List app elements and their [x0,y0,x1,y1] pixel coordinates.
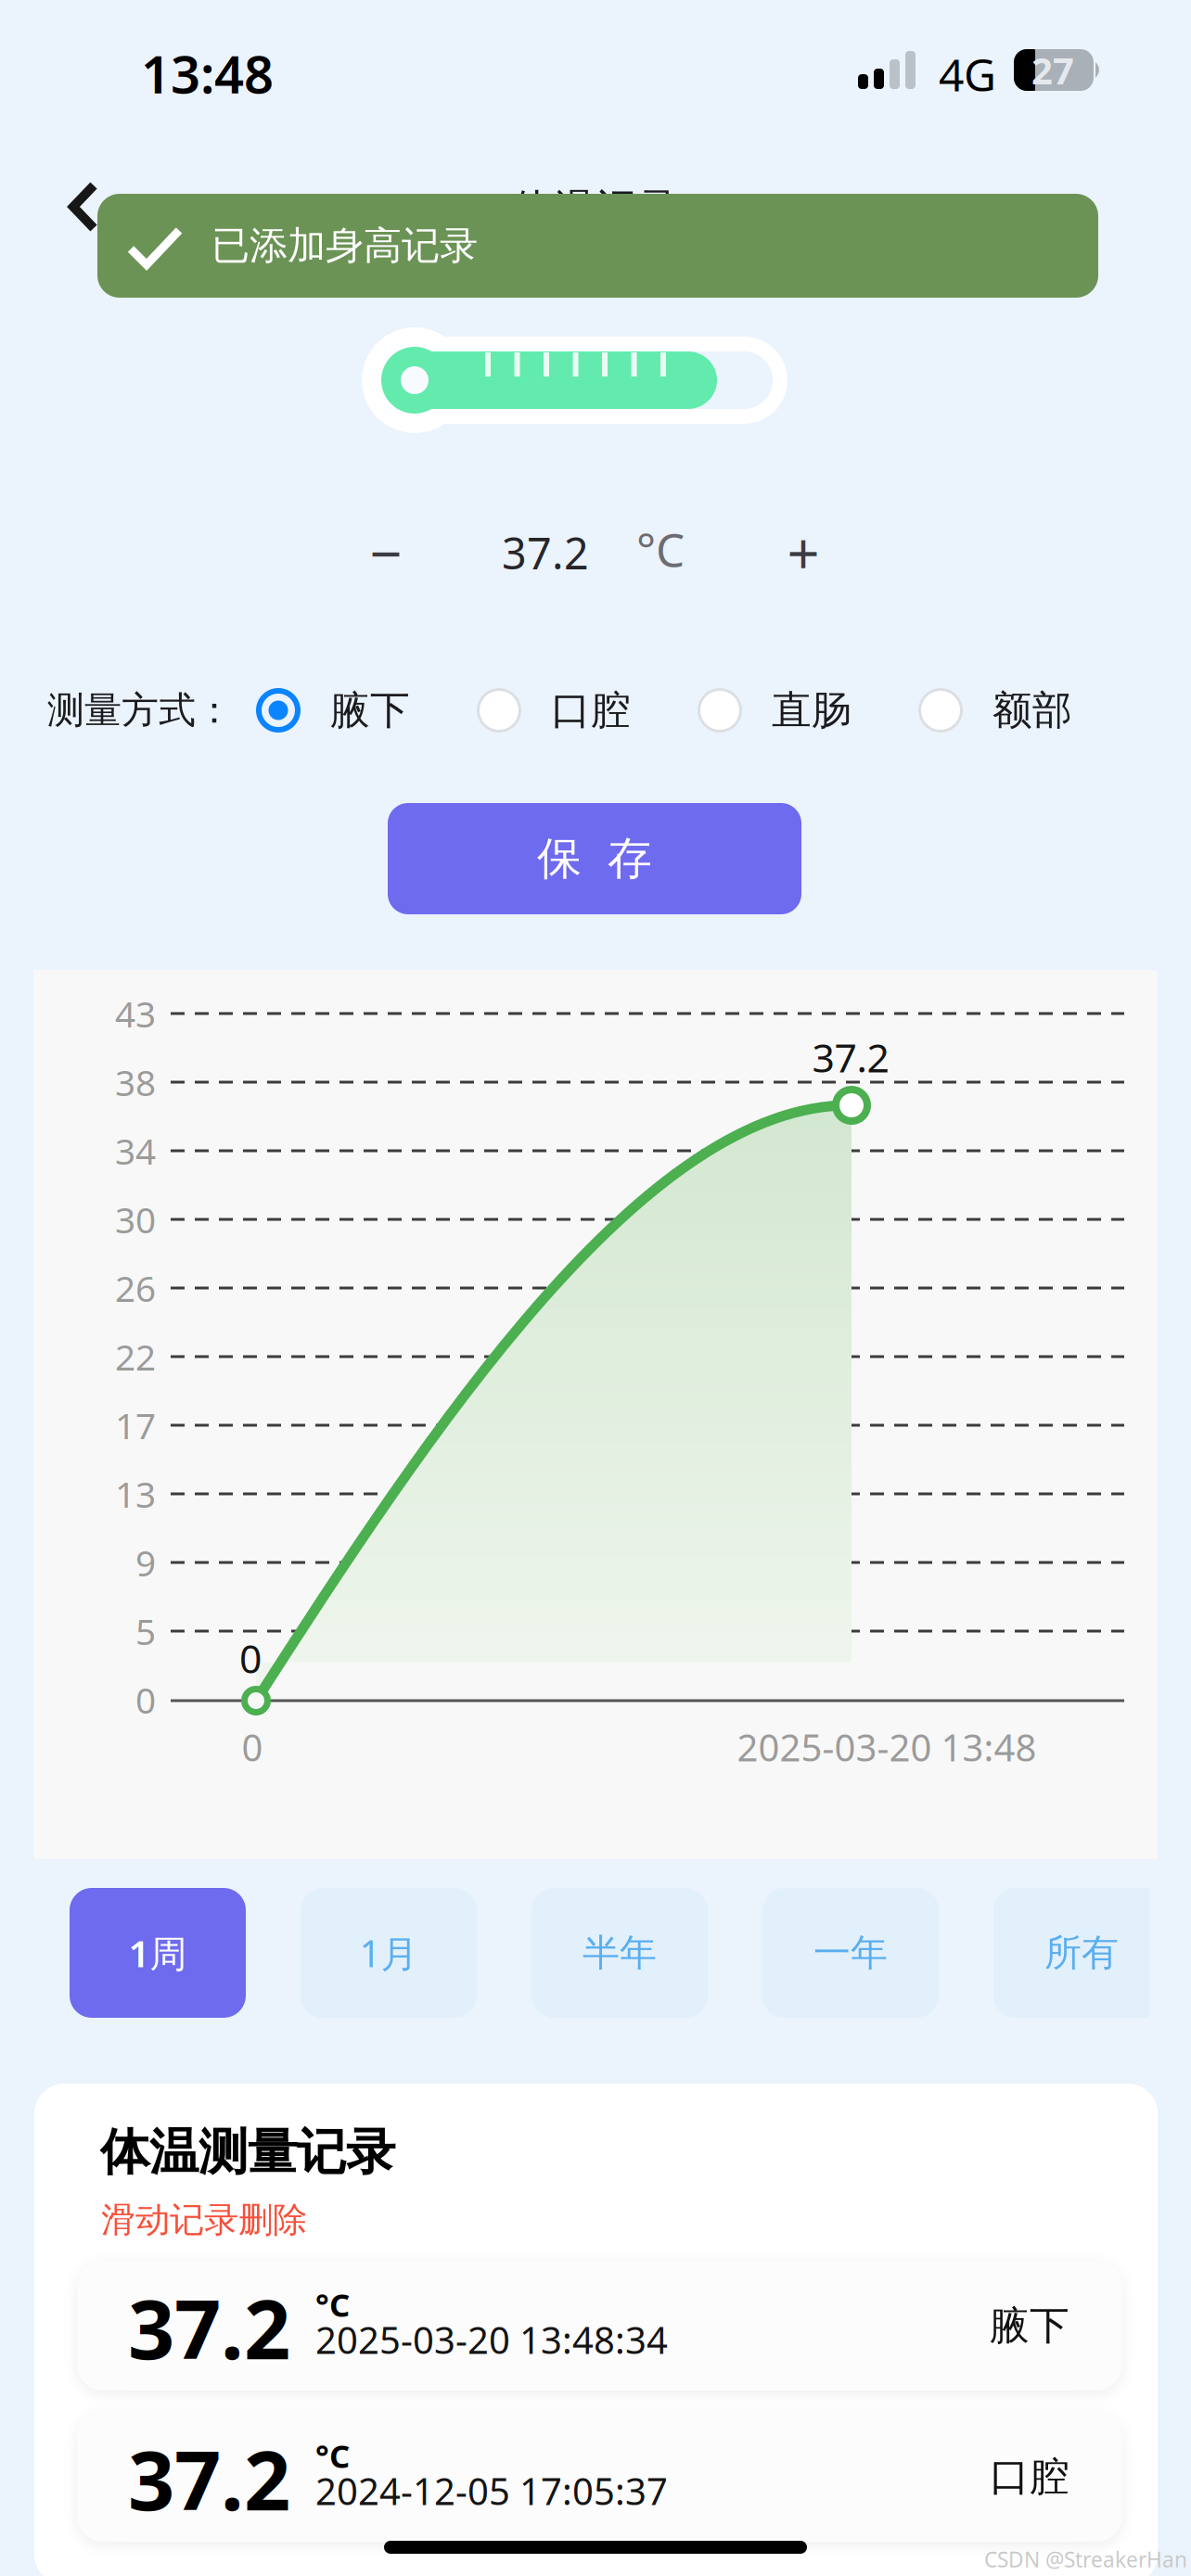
button[interactable]: Back [35,162,132,251]
staticText: 38 [115,1058,156,1106]
staticText: 半年 [583,1930,657,1976]
staticText: 已添加身高记录 [211,222,478,269]
staticText: °C [315,2434,350,2477]
staticText: 1周 [128,1928,187,1977]
button[interactable]: 保 存 [388,803,801,914]
staticText: 0 [135,1676,156,1723]
staticText: 1月 [359,1928,418,1977]
staticText: 口腔 [551,686,631,735]
button[interactable]: 一年 [762,1888,939,2018]
staticText: 13:48 [141,39,274,108]
button[interactable]: 1周 [70,1888,246,2018]
staticText: 2025-03-20 13:48 [737,1722,1037,1772]
staticText: 5 [135,1607,156,1655]
button[interactable]: 腋下 [256,675,419,746]
button[interactable]: 37.2 [77,2261,1122,2391]
staticText: 口腔 [990,2452,1069,2501]
staticText: 所有 [1044,1930,1119,1976]
staticText: 一年 [813,1930,888,1976]
button[interactable]: 所有 [993,1888,1170,2018]
staticText: 37.2 [812,1031,889,1083]
staticText: 额部 [992,686,1072,735]
staticText: 37.2 [502,524,589,581]
staticText: 保 存 [537,831,652,886]
button[interactable]: 额部 [918,675,1082,746]
staticText: 34 [115,1127,156,1175]
button[interactable]: Decrease temperature [339,506,432,599]
staticText: − [370,515,402,590]
staticText: 腋下 [990,2301,1069,2350]
button[interactable]: 半年 [531,1888,708,2018]
staticText: 37.2 [128,2424,290,2533]
staticText: 13 [115,1470,156,1518]
staticText: °C [636,519,685,579]
staticText: °C [315,2283,350,2326]
staticText: 0 [239,1632,262,1684]
staticText: 37.2 [128,2273,290,2382]
staticText: 26 [115,1264,156,1312]
button[interactable]: 1月 [301,1888,477,2018]
staticText: 直肠 [772,686,852,735]
staticText: 27 [1031,45,1074,95]
staticText: 17 [115,1401,156,1449]
staticText: 43 [115,990,156,1037]
staticText: CSDN @StreakerHan [984,2545,1187,2573]
staticText: 测量方式： [47,687,233,733]
staticText: 体温测量记录 [100,2122,395,2183]
staticText: 9 [135,1539,156,1586]
staticText: 0 [242,1722,263,1772]
staticText: 30 [115,1196,156,1243]
staticText: 22 [115,1333,156,1380]
staticText: 2024-12-05 17:05:37 [315,2466,668,2515]
staticText: 体温记录 [512,184,679,235]
staticText: 滑动记录删除 [101,2199,307,2241]
staticText: 腋下 [330,686,410,735]
button[interactable]: 37.2 [77,2412,1122,2542]
staticText: + [787,515,820,590]
button[interactable]: Increase temperature [757,506,850,599]
button[interactable]: 直肠 [698,675,861,746]
staticText: 4G [939,45,996,104]
staticText: 2025-03-20 13:48:34 [315,2315,668,2364]
button[interactable]: 口腔 [477,675,640,746]
